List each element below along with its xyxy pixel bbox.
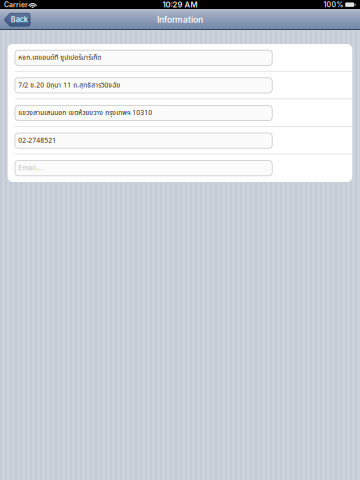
staticText: Carrier [4, 0, 28, 9]
staticText: Information [157, 14, 203, 25]
button[interactable]: 7/2 ซ.20 มิถุนา 11 ถ.สุทธิสารวินิจฉัย [8, 72, 352, 99]
button[interactable]: แขวงสามเสนนอก เขตห้วยขวาง กรุงเทพฯ 10310 [8, 99, 352, 127]
staticText: แขวงสามเสนนอก เขตห้วยขวาง กรุงเทพฯ 10310 [18, 108, 152, 118]
staticText: 7/2 ซ.20 มิถุนา 11 ถ.สุทธิสารวินิจฉัย [18, 80, 120, 90]
staticText: 100% [323, 0, 343, 9]
button[interactable]: 02-2748521 [8, 127, 352, 154]
button[interactable]: Email... [8, 154, 352, 182]
staticText: 10:29 AM [162, 0, 197, 9]
staticText: หจก.เคแอนด์ที ซูปเปอร์มาร์เก็ต [18, 53, 101, 63]
staticText: Back [11, 15, 28, 24]
button[interactable]: หจก.เคแอนด์ที ซูปเปอร์มาร์เก็ต [8, 44, 352, 72]
staticText: 02-2748521 [18, 136, 56, 146]
button[interactable]: Back [4, 13, 31, 26]
staticText: Email... [18, 163, 42, 173]
